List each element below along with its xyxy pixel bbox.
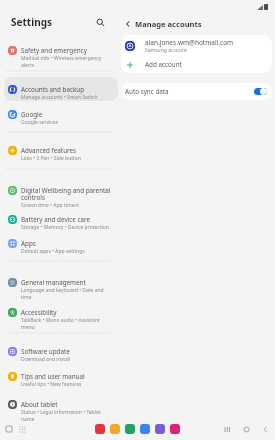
button[interactable]: Home	[242, 425, 250, 433]
button[interactable]	[95, 424, 105, 434]
button[interactable]: Google	[4, 107, 118, 131]
staticText: Language and keyboard • Date and time	[21, 287, 111, 300]
staticText: Status • Legal information • Tablet name	[21, 409, 111, 422]
button[interactable]: Tips and user manual	[4, 369, 118, 393]
staticText: Default apps • App settings	[21, 248, 85, 255]
staticText: Apps	[21, 239, 36, 248]
button[interactable]: General management	[4, 275, 118, 305]
staticText: Digital Wellbeing and parental controls	[21, 186, 111, 202]
button[interactable]	[140, 424, 150, 434]
staticText: Advanced features	[21, 146, 77, 155]
staticText: Accounts and backup	[21, 85, 85, 94]
staticText: Screen time • App timers	[21, 202, 79, 209]
button[interactable]: Digital Wellbeing and parental controls	[4, 183, 118, 213]
staticText: Safety and emergency	[21, 46, 87, 55]
button[interactable]	[155, 424, 165, 434]
staticText: Auto sync data	[125, 87, 254, 96]
staticText: Labs • S Pen • Side button	[21, 155, 81, 162]
button[interactable]: Back	[261, 425, 269, 433]
staticText: Manage accounts • Smart Switch	[21, 94, 98, 101]
button[interactable]: Software update	[4, 344, 118, 368]
staticText: Download and install	[21, 356, 71, 363]
staticText: alan.jones.wm@hotmail.com	[145, 38, 234, 47]
staticText: Add account	[145, 60, 182, 69]
staticText: Settings	[11, 15, 52, 29]
button[interactable]	[170, 424, 180, 434]
button[interactable]: Recent apps	[4, 424, 14, 434]
staticText: Useful tips • New features	[21, 381, 82, 388]
button[interactable]: All apps	[17, 424, 27, 434]
button[interactable]: alan.jones.wm@hotmail.com	[121, 35, 272, 56]
staticText: Accessibility	[21, 308, 57, 317]
staticText: Storage • Memory • Device protection	[21, 224, 109, 231]
staticText: Battery and device care	[21, 215, 91, 224]
button[interactable]: Recents	[223, 425, 231, 433]
button[interactable]: Add account	[121, 56, 272, 73]
staticText: Tips and user manual	[21, 372, 85, 381]
button[interactable]	[125, 424, 135, 434]
button[interactable]: Auto sync data	[121, 83, 272, 100]
staticText: Google	[21, 110, 43, 119]
button[interactable]	[110, 424, 120, 434]
staticText: Software update	[21, 347, 70, 356]
button[interactable]: Safety and emergency	[4, 43, 118, 71]
staticText: Google services	[21, 119, 58, 126]
button[interactable]: Search	[93, 15, 107, 29]
button[interactable]: Navigate up	[121, 17, 135, 31]
staticText: General management	[21, 278, 86, 287]
button[interactable]: Advanced features	[4, 143, 118, 167]
button[interactable]: About tablet	[4, 397, 118, 427]
staticText: Samsung account	[145, 47, 187, 54]
button[interactable]: Battery and device care	[4, 212, 118, 236]
staticText: Medical info • Wireless emergency alerts	[21, 55, 111, 68]
button[interactable]: Apps	[4, 236, 118, 260]
staticText: About tablet	[21, 400, 58, 409]
staticText: Manage accounts	[135, 19, 202, 29]
button[interactable]: Accessibility	[4, 305, 118, 335]
button[interactable]: Accounts and backup	[4, 82, 118, 106]
staticText: TalkBack • Mono audio • Assistant menu	[21, 317, 111, 330]
